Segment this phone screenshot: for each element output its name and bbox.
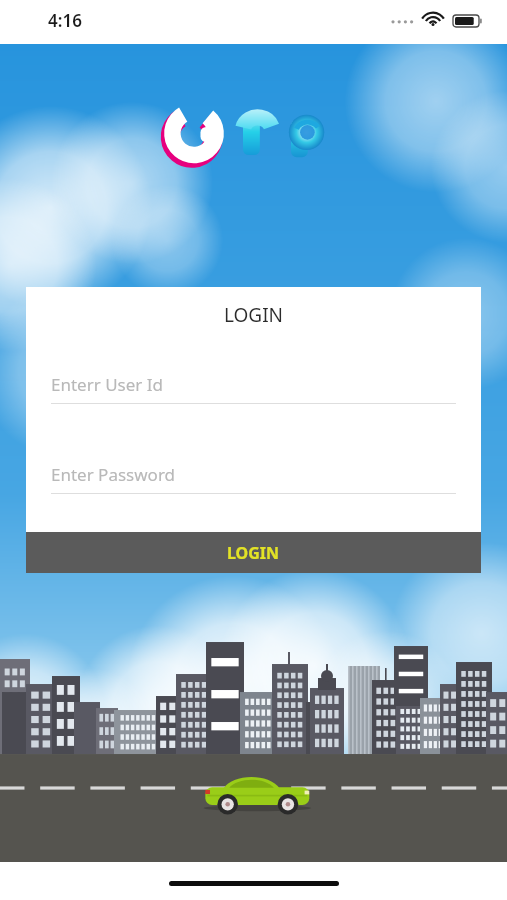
staticText: LOGIN — [51, 302, 456, 328]
staticText: Enterr User Id — [51, 373, 163, 396]
button[interactable]: Enterr User Id — [51, 373, 456, 404]
button[interactable]: Enter Password — [51, 463, 456, 494]
staticText: LOGIN — [227, 542, 280, 564]
staticText: 4:16 — [48, 9, 82, 32]
staticText: Enter Password — [51, 463, 176, 486]
button[interactable]: LOGIN — [26, 532, 481, 573]
